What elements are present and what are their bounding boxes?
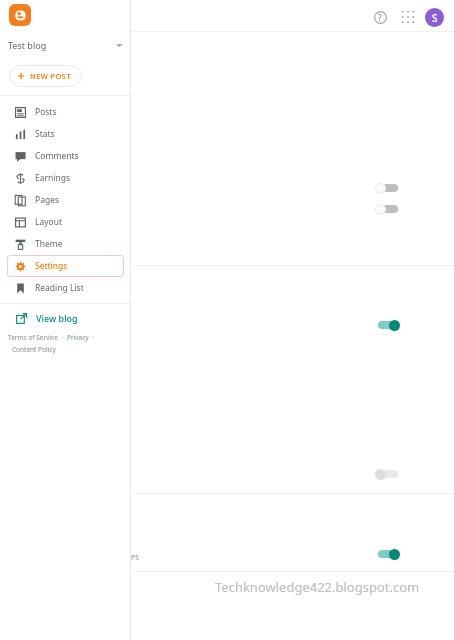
staticText: View blog xyxy=(36,312,78,324)
staticText: Stats xyxy=(35,128,55,140)
staticText: Content Policy xyxy=(12,345,56,354)
staticText: Pages xyxy=(35,194,60,206)
button[interactable]: NEW POST xyxy=(9,65,82,87)
button[interactable]: Toggle off xyxy=(375,202,401,216)
staticText: Techknowledge422.blogspot.com xyxy=(215,578,420,596)
button[interactable]: Settings xyxy=(7,255,124,277)
staticText: Theme xyxy=(35,238,63,250)
button[interactable]: Posts xyxy=(7,101,124,123)
button[interactable]: Comments xyxy=(7,145,124,167)
button[interactable]: Reading List xyxy=(7,277,124,299)
staticText: Posts xyxy=(35,106,57,118)
button[interactable]: Theme xyxy=(7,233,124,255)
button[interactable]: Privacy xyxy=(67,333,89,342)
staticText: Test blog xyxy=(8,39,47,51)
button[interactable]: Google apps xyxy=(396,5,420,29)
button[interactable]: Content Policy xyxy=(12,345,56,354)
button[interactable]: Help xyxy=(368,5,392,29)
button[interactable]: Toggle off xyxy=(375,181,401,195)
staticText: Comments xyxy=(35,150,79,162)
staticText: · xyxy=(89,333,95,342)
staticText: Reading List xyxy=(35,282,84,294)
staticText: Privacy xyxy=(67,333,89,342)
button[interactable]: Account xyxy=(425,8,444,27)
button[interactable]: Toggle off xyxy=(375,467,401,481)
staticText: Settings xyxy=(35,260,68,272)
button[interactable]: Stats xyxy=(7,123,124,145)
button[interactable]: Terms of Service xyxy=(8,333,58,342)
button[interactable]: Toggle on xyxy=(375,547,401,561)
staticText: Earnings xyxy=(35,172,71,184)
button[interactable]: View blog xyxy=(0,307,131,329)
button[interactable]: Test blog xyxy=(0,34,131,56)
button[interactable]: Earnings xyxy=(7,167,124,189)
button[interactable]: Toggle on xyxy=(375,318,401,332)
staticText: ? xyxy=(378,12,382,23)
button[interactable]: Blogger xyxy=(9,4,31,26)
button[interactable]: Pages xyxy=(7,189,124,211)
button[interactable]: Layout xyxy=(7,211,124,233)
staticText: · xyxy=(58,333,67,342)
staticText: Layout xyxy=(35,216,63,228)
staticText: NEW POST xyxy=(30,71,71,81)
staticText: S xyxy=(432,11,438,25)
staticText: PS xyxy=(131,553,140,563)
staticText: Terms of Service xyxy=(8,333,58,342)
